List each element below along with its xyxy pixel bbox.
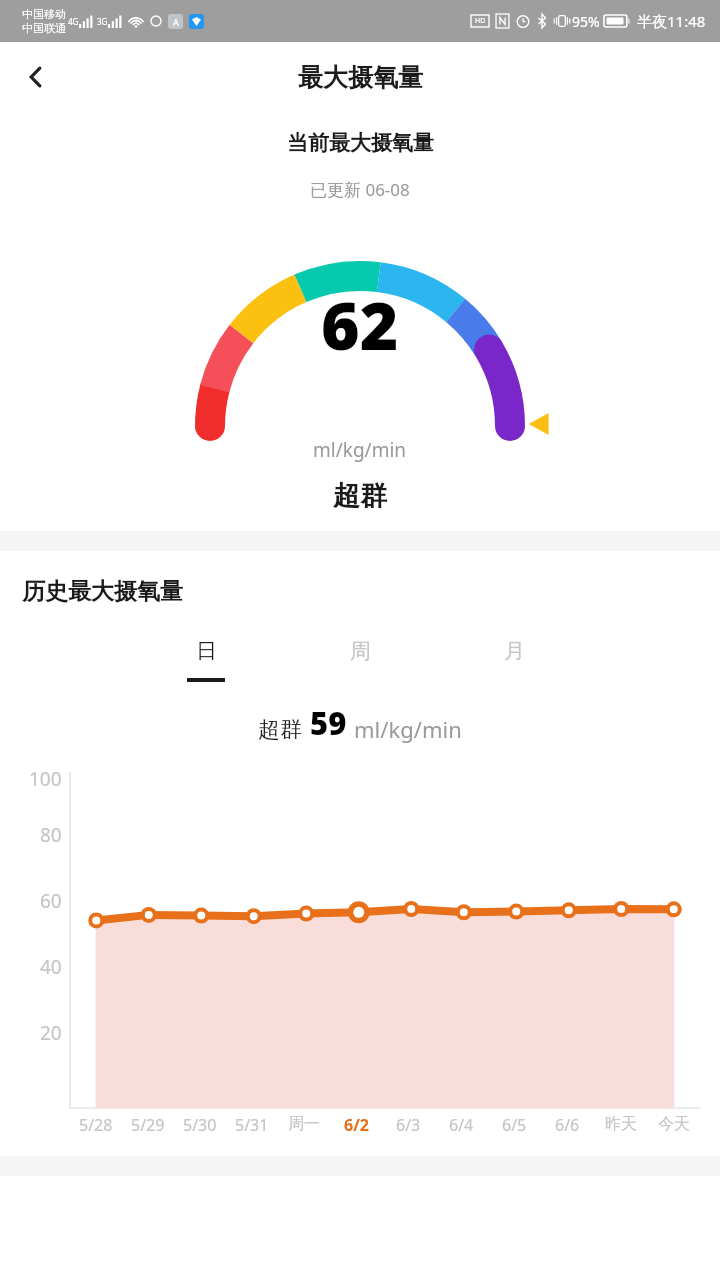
staticText: 100 bbox=[29, 766, 62, 792]
staticText: 超群 bbox=[333, 479, 387, 513]
staticText: 中国移动 bbox=[22, 7, 66, 21]
staticText: 3G bbox=[97, 16, 108, 27]
staticText: ml/kg/min bbox=[313, 437, 407, 463]
staticText: 昨天 bbox=[605, 1114, 637, 1134]
staticText: 60 bbox=[40, 888, 62, 914]
staticText: A bbox=[173, 16, 179, 28]
staticText: 月 bbox=[504, 638, 525, 664]
staticText: 已更新 06-08 bbox=[310, 178, 410, 201]
staticText: 周一 bbox=[288, 1114, 320, 1134]
staticText: ml/kg/min bbox=[354, 714, 462, 744]
staticText: 半夜11:48 bbox=[637, 11, 706, 31]
staticText: 40 bbox=[40, 954, 62, 980]
staticText: 6/2 bbox=[344, 1114, 369, 1136]
staticText: 日 bbox=[196, 638, 217, 664]
staticText: HD bbox=[475, 16, 486, 26]
staticText: 5/28 bbox=[79, 1114, 113, 1136]
staticText: 历史最大摄氧量 bbox=[22, 577, 183, 606]
staticText: 6/5 bbox=[502, 1114, 527, 1136]
staticText: 62 bbox=[321, 279, 399, 369]
button[interactable]: 日 bbox=[168, 634, 244, 686]
staticText: 今天 bbox=[658, 1114, 690, 1134]
staticText: 80 bbox=[40, 822, 62, 848]
staticText: 超群 bbox=[258, 716, 302, 744]
button[interactable]: 月 bbox=[476, 634, 552, 686]
button[interactable]: 周 bbox=[322, 634, 398, 686]
staticText: 20 bbox=[40, 1020, 62, 1046]
staticText: 95% bbox=[572, 12, 600, 31]
staticText: 最大摄氧量 bbox=[298, 62, 423, 93]
staticText: 中国联通 bbox=[22, 21, 66, 35]
staticText: 当前最大摄氧量 bbox=[287, 130, 434, 156]
staticText: 周 bbox=[350, 638, 371, 664]
staticText: 6/4 bbox=[449, 1114, 474, 1136]
staticText: 59 bbox=[310, 702, 347, 744]
staticText: 4G bbox=[68, 16, 79, 27]
staticText: 6/3 bbox=[396, 1114, 421, 1136]
staticText: 5/29 bbox=[131, 1114, 165, 1136]
staticText: 6/6 bbox=[555, 1114, 580, 1136]
button[interactable]: Back bbox=[8, 49, 64, 105]
staticText: 5/31 bbox=[235, 1114, 269, 1136]
staticText: 5/30 bbox=[183, 1114, 217, 1136]
